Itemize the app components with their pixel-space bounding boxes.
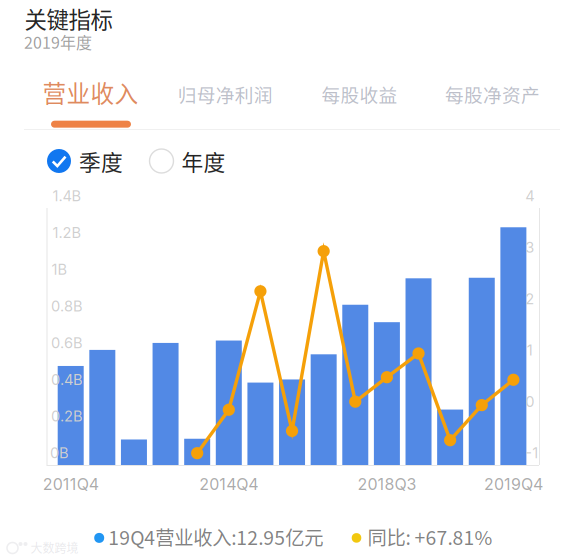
staticText: 同比: +67.81% (367, 522, 492, 550)
staticText: 0.8B (51, 297, 83, 315)
staticText: 营业收入 (43, 75, 139, 109)
staticText: -1 (525, 444, 538, 462)
staticText: 关键指标 (24, 2, 112, 35)
staticText: 4 (525, 187, 534, 205)
staticText: 2011Q4 (43, 474, 99, 494)
staticText: 2019年度 (24, 30, 92, 53)
staticText: 归母净利润 (178, 80, 273, 107)
staticText: 每股收益 (322, 80, 398, 107)
button[interactable]: 季度 (47, 144, 123, 178)
staticText: 2019Q4 (484, 474, 543, 494)
staticText: 1.2B (52, 224, 81, 241)
staticText: 3 (525, 238, 534, 256)
staticText: 2018Q3 (357, 474, 416, 494)
button[interactable]: 每股收益 (300, 74, 420, 114)
staticText: 0.2B (51, 407, 83, 425)
staticText: 2014Q4 (199, 474, 258, 494)
staticText: 季度 (79, 145, 123, 177)
button[interactable]: 每股净资产 (433, 74, 553, 114)
staticText: 0.6B (51, 334, 83, 352)
staticText: 0 (525, 393, 534, 410)
button[interactable]: 年度 (149, 144, 225, 178)
staticText: 大数跨境 (30, 539, 78, 556)
staticText: 1 (527, 341, 533, 359)
button[interactable]: 营业收入 (31, 72, 151, 112)
button[interactable]: 归母净利润 (165, 74, 285, 114)
staticText: 1.4B (52, 187, 81, 205)
staticText: 0B (50, 444, 69, 462)
staticText: 每股净资产 (445, 80, 540, 107)
staticText: 2 (525, 290, 534, 308)
staticText: 19Q4营业收入:12.95亿元 (108, 522, 323, 550)
staticText: 年度 (181, 145, 225, 177)
staticText: 0.4B (51, 371, 83, 388)
staticText: 1B (51, 260, 67, 278)
